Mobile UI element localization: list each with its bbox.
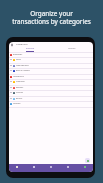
- button[interactable]: Cleaning: [9, 79, 93, 84]
- staticText: Repairs: [16, 86, 24, 89]
- button[interactable]: Tab 2: [42, 164, 59, 172]
- button[interactable]: Menu: [9, 42, 15, 47]
- staticText: Expenses: [13, 53, 23, 56]
- staticText: Cleaning: [16, 80, 25, 83]
- button[interactable]: Income: [51, 47, 93, 52]
- button[interactable]: Add category: [85, 158, 90, 163]
- button[interactable]: Food: [9, 57, 93, 62]
- staticText: Household: [13, 75, 24, 78]
- button[interactable]: Tab 4: [76, 164, 93, 172]
- staticText: Maintenance: [16, 64, 29, 67]
- staticText: Food: [16, 58, 21, 61]
- button[interactable]: Household: [9, 74, 93, 79]
- button[interactable]: Bills & utilities: [9, 68, 93, 73]
- staticText: Income: [13, 102, 21, 105]
- button[interactable]: Tab 3: [59, 164, 76, 172]
- button[interactable]: Maintenance: [9, 63, 93, 68]
- button[interactable]: Repairs: [9, 85, 93, 90]
- button[interactable]: Bonus: [9, 96, 93, 101]
- button[interactable]: Charity: [9, 90, 93, 95]
- button[interactable]: Expense: [9, 47, 51, 52]
- staticText: Income: [68, 47, 76, 50]
- staticText: Organize your transactions by categories: [0, 9, 103, 26]
- button[interactable]: Expenses: [9, 52, 93, 57]
- button[interactable]: Income: [9, 101, 93, 106]
- staticText: Categories: [16, 43, 28, 46]
- staticText: Bills & utilities: [16, 69, 30, 72]
- staticText: Charity: [16, 91, 24, 94]
- button[interactable]: Tab 1: [25, 164, 42, 172]
- staticText: Expense: [26, 47, 35, 50]
- button[interactable]: Tab 0: [9, 164, 25, 172]
- staticText: Bonus: [16, 97, 23, 100]
